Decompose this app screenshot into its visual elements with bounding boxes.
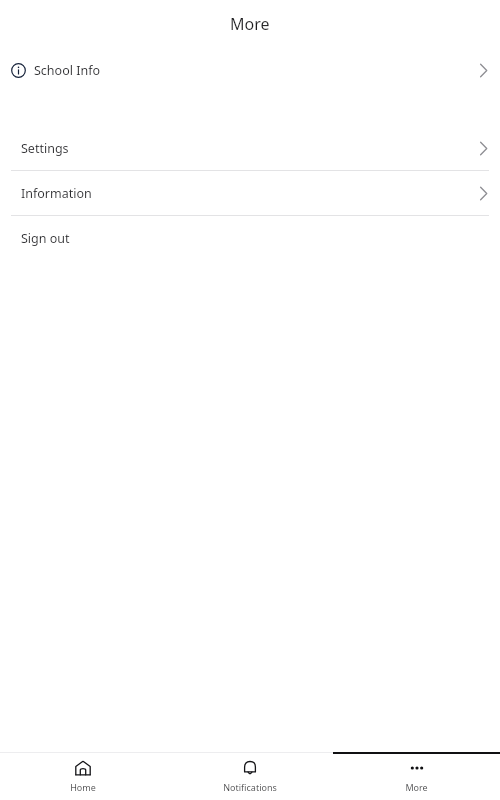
staticText: Home xyxy=(70,781,96,793)
button[interactable]: Settings xyxy=(0,126,500,171)
staticText: School Info xyxy=(34,62,101,79)
button[interactable]: Notifications xyxy=(166,752,333,800)
button[interactable]: Sign out xyxy=(0,216,500,261)
button[interactable]: Home xyxy=(0,752,166,800)
staticText: Information xyxy=(21,185,92,202)
button[interactable]: More xyxy=(333,752,500,800)
other: More xyxy=(408,759,426,777)
staticText: Settings xyxy=(21,140,69,157)
staticText: Notifications xyxy=(223,781,277,793)
button[interactable]: Information xyxy=(0,171,500,216)
other: Home xyxy=(74,759,92,777)
other: Info xyxy=(11,63,26,78)
other: Notifications xyxy=(241,759,259,777)
staticText: More xyxy=(230,13,270,35)
staticText: More xyxy=(405,781,428,793)
button[interactable]: Info xyxy=(0,48,500,93)
staticText: Sign out xyxy=(21,230,70,247)
